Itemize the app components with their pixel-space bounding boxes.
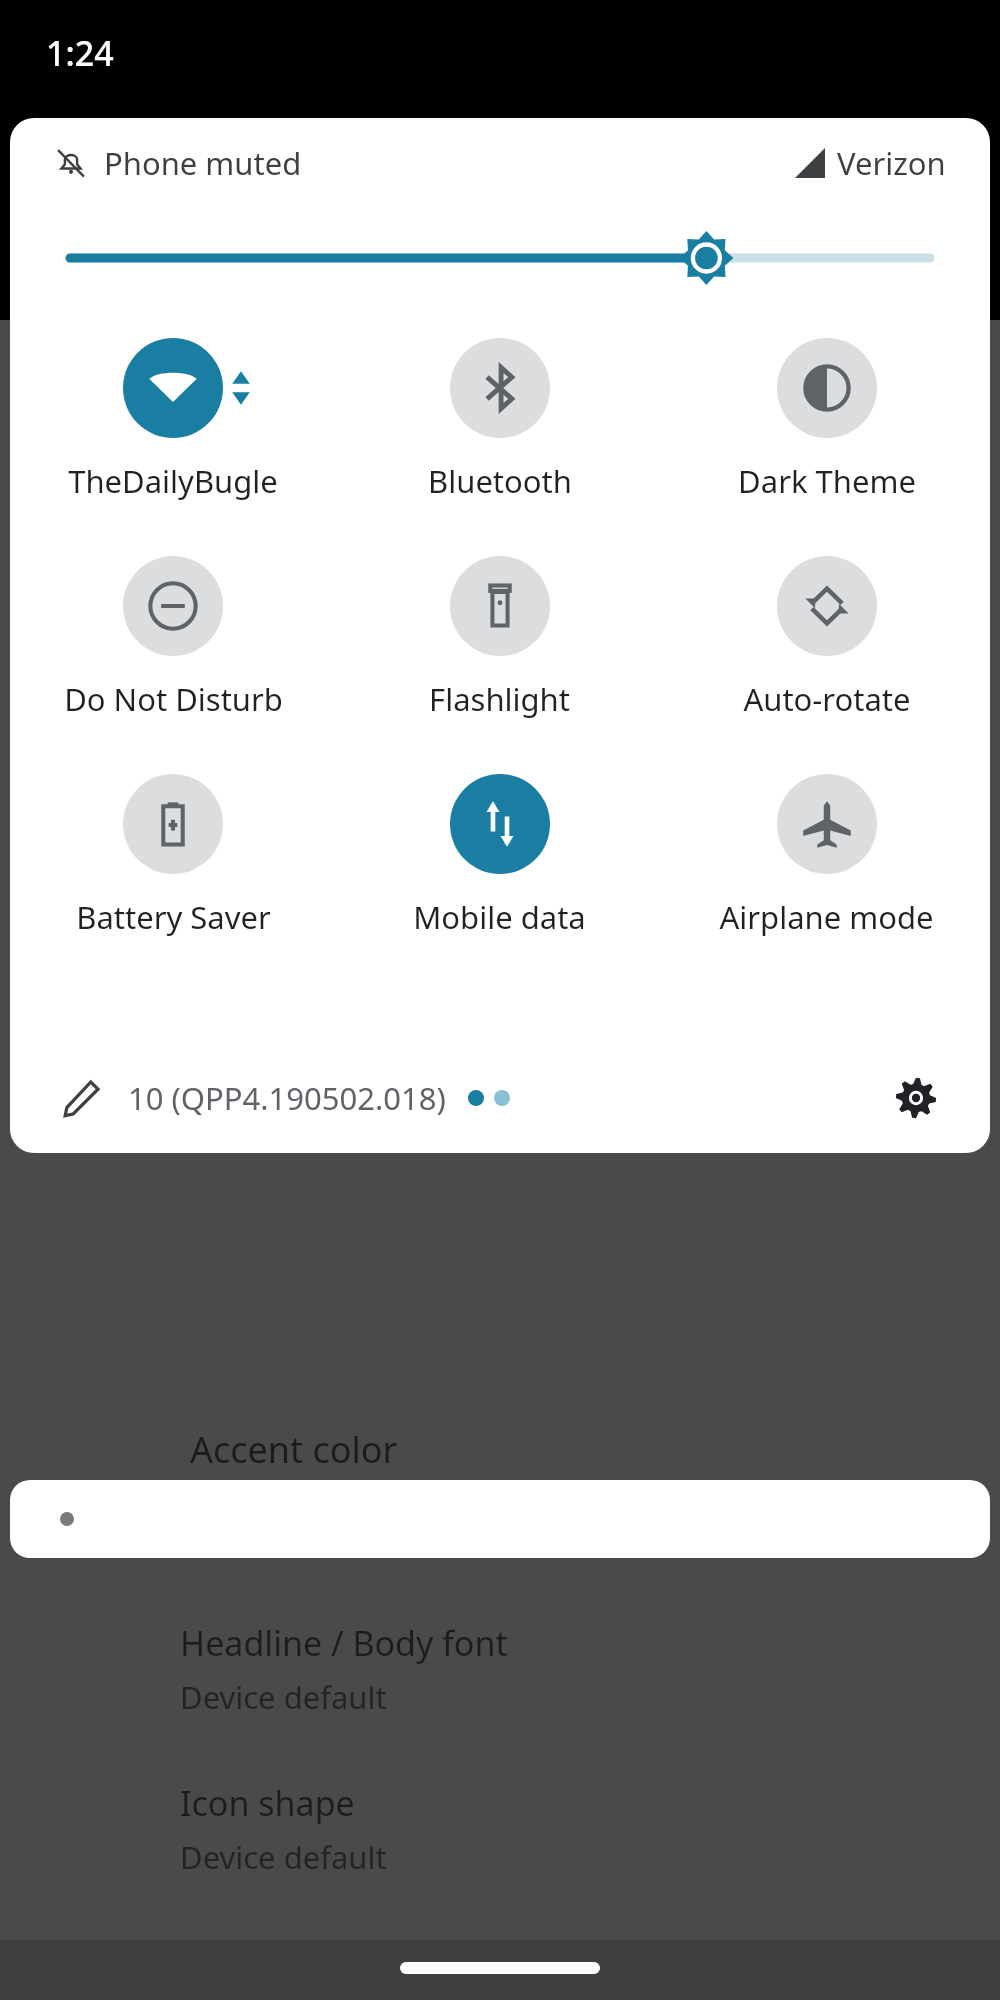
staticText: Icon shape (180, 1780, 355, 1826)
staticText: Headline / Body font (180, 1620, 508, 1666)
button[interactable]: TheDailyBugle (10, 334, 336, 506)
button[interactable]: Do Not Disturb (10, 552, 336, 724)
staticText: Device default (180, 1836, 387, 1878)
staticText: Do Not Disturb (64, 678, 283, 720)
staticText: 10 (QPP4.190502.018) (128, 1077, 446, 1119)
button[interactable]: Bluetooth (336, 334, 663, 506)
button[interactable] (10, 1480, 990, 1558)
button[interactable]: Settings (886, 1068, 946, 1128)
button[interactable]: Mobile data (336, 770, 663, 942)
staticText: Auto-rotate (743, 678, 911, 720)
staticText: Battery Saver (76, 896, 271, 938)
staticText: TheDailyBugle (68, 460, 278, 502)
staticText: Flashlight (429, 678, 570, 720)
button[interactable]: Battery Saver (10, 770, 336, 942)
button[interactable]: Flashlight (336, 552, 663, 724)
staticText: Airplane mode (719, 896, 934, 938)
button[interactable]: Dark Theme (663, 334, 990, 506)
button[interactable]: Brightness (70, 208, 930, 308)
button[interactable]: Phone muted (54, 142, 310, 184)
button[interactable]: Airplane mode (663, 770, 990, 942)
staticText: 1:24 (46, 30, 114, 76)
button[interactable]: Edit (54, 1070, 110, 1126)
staticText: Mobile data (413, 896, 586, 938)
staticText: Phone muted (104, 142, 302, 184)
staticText: Verizon (837, 142, 946, 184)
staticText: Bluetooth (428, 460, 572, 502)
staticText: Dark Theme (738, 460, 916, 502)
staticText: Accent color (190, 1425, 398, 1474)
staticText: Device default (180, 1676, 387, 1718)
button[interactable]: Auto-rotate (663, 552, 990, 724)
